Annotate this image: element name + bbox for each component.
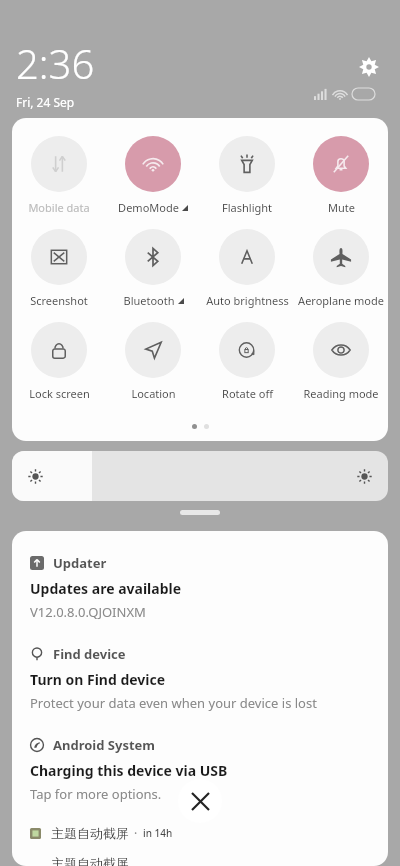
button[interactable]: Reading mode	[294, 322, 388, 401]
staticText: Fri, 24 Sep	[16, 94, 75, 110]
staticText: V12.0.8.0.QJOINXM	[30, 603, 146, 621]
staticText: Updater	[53, 554, 107, 572]
staticText: 主题自动截屏	[51, 825, 129, 841]
button[interactable]	[12, 451, 388, 501]
button[interactable]: Mute	[294, 136, 388, 215]
staticText: in 14h	[143, 826, 173, 840]
staticText: ·	[134, 825, 138, 841]
button[interactable]: Updater	[30, 554, 370, 621]
staticText: Location	[131, 386, 176, 401]
button[interactable]: Rotate off	[200, 322, 294, 401]
button[interactable]: Close notifications	[178, 779, 222, 823]
button[interactable]: Lock screen	[12, 322, 106, 401]
staticText: Screenshot	[30, 293, 88, 308]
staticText: 主题自动截屏	[51, 855, 129, 866]
staticText: Aeroplane mode	[298, 293, 384, 308]
staticText: DemoMode	[118, 200, 179, 215]
staticText: 2:36	[16, 36, 95, 90]
button[interactable]: Find device	[30, 645, 370, 712]
button[interactable]: DemoMode	[106, 136, 200, 215]
staticText: Reading mode	[303, 386, 379, 401]
staticText: Mobile data	[28, 200, 90, 215]
staticText: Charging this device via USB	[30, 761, 228, 780]
staticText: Protect your data even when your device …	[30, 694, 317, 712]
staticText: Rotate off	[222, 386, 273, 401]
button[interactable]: Mobile data	[12, 136, 106, 215]
staticText: Auto brightness	[206, 293, 289, 308]
button[interactable]: Location	[106, 322, 200, 401]
staticText: Find device	[53, 645, 126, 663]
button[interactable]: Bluetooth	[106, 229, 200, 308]
staticText: Bluetooth	[123, 293, 175, 308]
staticText: Mute	[328, 200, 355, 215]
button[interactable]: Settings	[356, 54, 382, 80]
staticText: Lock screen	[29, 386, 90, 401]
staticText: Flashlight	[222, 200, 272, 215]
button[interactable]: Aeroplane mode	[294, 229, 388, 308]
button[interactable]: Auto brightness	[200, 229, 294, 308]
button[interactable]: Screenshot	[12, 229, 106, 308]
button[interactable]: Flashlight	[200, 136, 294, 215]
staticText: Updates are available	[30, 579, 182, 598]
button[interactable]: Android System	[30, 736, 370, 803]
staticText: Android System	[53, 736, 156, 754]
staticText: Turn on Find device	[30, 670, 166, 689]
staticText: Tap for more options.	[30, 785, 162, 803]
